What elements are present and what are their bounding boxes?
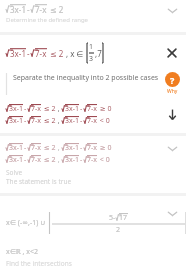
button[interactable]: x∈ xyxy=(0,196,186,270)
staticText: ≥ 0 xyxy=(98,143,112,153)
staticText: 3x-1 xyxy=(65,143,79,153)
button[interactable]: 3x-1 xyxy=(0,35,186,64)
staticText: 3x-1 xyxy=(9,116,23,126)
staticText: , x ∈ xyxy=(64,48,84,59)
staticText: 3x-1 xyxy=(9,155,23,165)
staticText: ≤ 2 xyxy=(42,143,56,153)
staticText: 7-x xyxy=(87,116,97,126)
staticText: - xyxy=(24,143,27,153)
staticText: - xyxy=(27,48,30,59)
staticText: Determine the defined range xyxy=(6,16,88,24)
staticText: 7-x xyxy=(31,143,41,153)
staticText: - xyxy=(80,104,83,114)
staticText: 3 xyxy=(89,54,94,64)
staticText: < 0 xyxy=(98,116,110,126)
staticText: , xyxy=(56,155,62,165)
staticText: 7-x xyxy=(87,104,97,114)
staticText: 7-x xyxy=(35,48,47,59)
staticText: x∈ xyxy=(6,218,16,228)
staticText: 1 xyxy=(89,42,94,52)
staticText: 3x-1 xyxy=(9,104,23,114)
staticText: 7-x xyxy=(87,143,97,153)
staticText: < 0 xyxy=(98,155,110,165)
staticText: x∈ℝ , x<2 xyxy=(6,247,39,257)
staticText: ? xyxy=(170,74,175,86)
staticText: Solve xyxy=(6,168,23,177)
staticText: 7-x xyxy=(87,155,97,165)
staticText: 2 xyxy=(116,225,121,235)
staticText: - xyxy=(24,155,27,165)
staticText: ≤ 2 xyxy=(42,104,56,114)
staticText: 17 xyxy=(119,213,128,223)
staticText: ≥ 0 xyxy=(98,104,112,114)
staticText: 7-x xyxy=(31,155,41,165)
staticText: Separate the inequality into 2 possible … xyxy=(13,73,159,83)
staticText: - xyxy=(80,155,83,165)
staticText: ≤ 2 xyxy=(48,4,64,15)
staticText: The statement is true xyxy=(6,177,72,186)
staticText: 7-x xyxy=(35,4,47,15)
staticText: Find the intersections xyxy=(6,259,72,268)
staticText: , xyxy=(56,143,62,153)
button[interactable]: 3x-1 xyxy=(0,136,186,193)
staticText: 3x-1 xyxy=(65,155,79,165)
staticText: 7-x xyxy=(31,104,41,114)
staticText: - xyxy=(24,104,27,114)
staticText: ≤ 2 xyxy=(42,155,56,165)
staticText: ≤ 2 xyxy=(42,116,56,126)
staticText: - xyxy=(80,143,83,153)
staticText: ≤ 2 xyxy=(48,48,64,59)
button[interactable]: 3x-1 xyxy=(0,0,186,32)
button[interactable]: Expand xyxy=(163,105,182,124)
staticText: 3x-1 xyxy=(9,143,23,153)
staticText: 5- xyxy=(109,213,116,223)
staticText: ,7 xyxy=(95,48,102,59)
staticText: - xyxy=(27,4,30,15)
staticText: , xyxy=(56,104,62,114)
button[interactable]: Why xyxy=(163,70,182,97)
staticText: Why xyxy=(167,88,178,95)
staticText: 3x-1 xyxy=(10,48,26,59)
staticText: 7-x xyxy=(31,116,41,126)
button[interactable]: 3x-1 xyxy=(0,103,186,126)
staticText: - xyxy=(80,116,83,126)
staticText: (-∞,-1) ∪ xyxy=(16,218,46,228)
staticText: 3x-1 xyxy=(10,4,26,15)
staticText: 3x-1 xyxy=(65,104,79,114)
staticText: , xyxy=(56,116,62,126)
staticText: 3x-1 xyxy=(65,116,79,126)
button[interactable]: Close xyxy=(162,43,182,63)
staticText: - xyxy=(24,116,27,126)
